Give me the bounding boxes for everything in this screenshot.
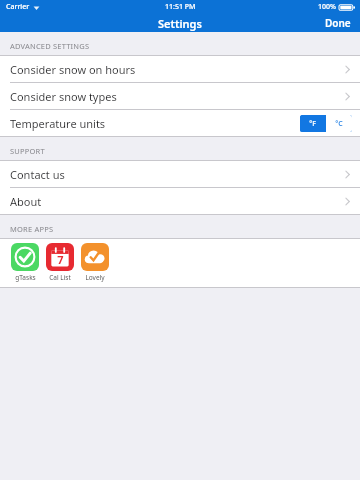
- staticText: gTasks: [15, 273, 36, 282]
- staticText: 100%: [318, 2, 336, 12]
- button[interactable]: Contact us: [0, 161, 360, 187]
- staticText: Consider snow on hours: [10, 62, 136, 77]
- staticText: SUPPORT: [10, 146, 45, 156]
- staticText: Cal List: [49, 273, 71, 282]
- button[interactable]: About: [0, 188, 360, 214]
- button[interactable]: Consider snow types: [0, 83, 360, 109]
- button[interactable]: Consider snow on hours: [0, 56, 360, 82]
- staticText: About: [10, 194, 42, 209]
- staticText: 11:51 PM: [165, 2, 196, 12]
- staticText: MORE APPS: [10, 224, 54, 234]
- button[interactable]: °F: [300, 115, 325, 132]
- staticText: 7: [57, 252, 64, 267]
- staticText: Lovely: [85, 273, 105, 282]
- staticText: Temperature units: [10, 116, 106, 131]
- button[interactable]: °C: [326, 115, 352, 132]
- button[interactable]: gTasks: [10, 243, 40, 282]
- staticText: Settings: [158, 16, 202, 31]
- staticText: Contact us: [10, 167, 65, 182]
- staticText: Consider snow types: [10, 89, 117, 104]
- staticText: Done: [325, 16, 351, 30]
- button[interactable]: Cal List: [45, 243, 75, 282]
- button[interactable]: Done: [316, 14, 360, 32]
- staticText: Carrier: [6, 2, 30, 12]
- staticText: °C: [335, 119, 343, 129]
- staticText: ADVANCED SETTINGS: [10, 41, 90, 51]
- staticText: °F: [309, 119, 316, 129]
- button[interactable]: Lovely: [80, 243, 110, 282]
